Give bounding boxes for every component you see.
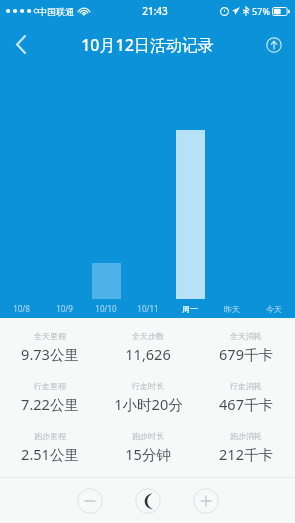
staticText: 昨天: [224, 304, 240, 314]
staticText: 跑步消耗: [230, 431, 262, 441]
button[interactable]: 10/10: [85, 299, 127, 318]
button[interactable]: 10/9: [43, 299, 85, 318]
button[interactable]: 10/8: [0, 299, 43, 318]
staticText: 11,626: [125, 344, 171, 364]
button[interactable]: Increase: [193, 488, 219, 514]
staticText: 1小时20分: [114, 394, 183, 414]
staticText: 行走消耗: [230, 381, 262, 391]
button[interactable]: 跑步消耗: [197, 430, 295, 465]
staticText: 全天里程: [34, 331, 66, 341]
staticText: 跑步时长: [132, 431, 164, 441]
button[interactable]: 跑步里程: [0, 430, 99, 465]
button[interactable]: Sleep: [135, 488, 161, 514]
staticText: 中国联通: [38, 6, 74, 17]
button[interactable]: 周一: [169, 299, 211, 318]
staticText: 行走里程: [34, 381, 66, 391]
button[interactable]: 跑步时长: [99, 430, 197, 465]
button[interactable]: 全天消耗: [197, 330, 295, 365]
button[interactable]: 行走时长: [99, 380, 197, 415]
button[interactable]: Share: [253, 22, 295, 67]
staticText: 9.73公里: [21, 344, 79, 364]
staticText: 周一: [182, 304, 198, 314]
staticText: 679千卡: [219, 344, 273, 364]
staticText: 全天消耗: [230, 331, 262, 341]
staticText: 57%: [252, 5, 270, 17]
staticText: 行走时长: [132, 381, 164, 391]
button[interactable]: Decrease: [77, 488, 103, 514]
button[interactable]: 全天里程: [0, 330, 99, 365]
staticText: 10/8: [13, 303, 30, 314]
staticText: 10月12日活动记录: [81, 34, 214, 56]
staticText: 15分钟: [125, 444, 171, 464]
button[interactable]: 今天: [253, 299, 295, 318]
staticText: 212千卡: [219, 444, 273, 464]
staticText: 跑步里程: [34, 431, 66, 441]
staticText: 467千卡: [219, 394, 273, 414]
staticText: 7.22公里: [21, 394, 79, 414]
staticText: 10/10: [95, 303, 117, 314]
staticText: 10/11: [137, 303, 159, 314]
staticText: 今天: [266, 304, 282, 314]
staticText: 10/9: [56, 303, 73, 314]
button[interactable]: 昨天: [211, 299, 253, 318]
button[interactable]: 行走消耗: [197, 380, 295, 415]
button[interactable]: Back: [0, 22, 42, 67]
button[interactable]: 全天步数: [99, 330, 197, 365]
staticText: 2.51公里: [21, 444, 79, 464]
staticText: 全天步数: [132, 331, 164, 341]
button[interactable]: 10/11: [127, 299, 169, 318]
staticText: 21:43: [142, 4, 168, 18]
button[interactable]: 行走里程: [0, 380, 99, 415]
